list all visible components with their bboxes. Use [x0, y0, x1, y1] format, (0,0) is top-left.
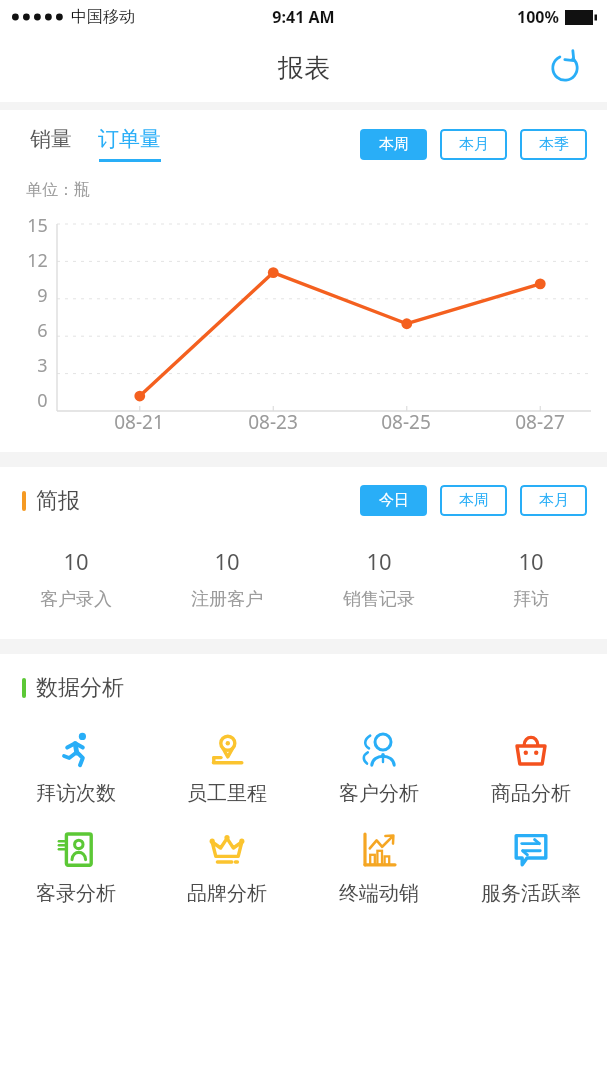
staticText: 08-23 — [248, 409, 298, 435]
staticText: 商品分析 — [491, 781, 571, 806]
button[interactable]: 本月 — [520, 485, 587, 516]
staticText: 品牌分析 — [187, 881, 267, 906]
staticText: 08-27 — [515, 409, 565, 435]
staticText: 本季 — [539, 135, 569, 154]
button[interactable]: 10 — [151, 546, 303, 611]
staticText: 注册客户 — [191, 588, 263, 611]
staticText: 本月 — [539, 491, 569, 510]
button[interactable]: 商品分析 — [455, 728, 607, 806]
staticText: 客户录入 — [40, 588, 112, 611]
button[interactable]: 终端动销 — [303, 828, 455, 906]
staticText: 拜访次数 — [36, 781, 116, 806]
staticText: 9:41 AM — [272, 6, 335, 28]
staticText: 终端动销 — [339, 881, 419, 906]
button[interactable]: 销量 — [26, 126, 76, 162]
staticText: 10 — [63, 546, 89, 576]
staticText: 9 — [37, 283, 48, 308]
staticText: 10 — [214, 546, 240, 576]
staticText: 销售记录 — [343, 588, 415, 611]
staticText: 服务活跃率 — [481, 881, 581, 906]
button[interactable]: 本季 — [520, 129, 587, 160]
staticText: 员工里程 — [187, 781, 267, 806]
button[interactable]: 订单量 — [98, 126, 161, 162]
button[interactable]: 10 — [0, 546, 151, 611]
staticText: 15 — [27, 213, 48, 238]
staticText: 数据分析 — [36, 674, 124, 702]
staticText: 销量 — [30, 126, 72, 152]
button[interactable]: 品牌分析 — [151, 828, 303, 906]
staticText: 拜访 — [513, 588, 549, 611]
staticText: 08-21 — [114, 409, 164, 435]
staticText: 10 — [366, 546, 392, 576]
staticText: 08-25 — [381, 409, 431, 435]
staticText: 本月 — [459, 135, 489, 154]
staticText: 报表 — [278, 52, 330, 85]
staticText: 0 — [37, 388, 48, 413]
button[interactable]: 客录分析 — [0, 828, 151, 906]
button[interactable]: Refresh — [541, 44, 589, 92]
staticText: 6 — [37, 318, 48, 343]
button[interactable]: 员工里程 — [151, 728, 303, 806]
staticText: 12 — [27, 248, 48, 273]
staticText: 客录分析 — [36, 881, 116, 906]
button[interactable]: 服务活跃率 — [455, 828, 607, 906]
staticText: 100% — [517, 6, 559, 28]
button[interactable]: 本周 — [440, 485, 507, 516]
button[interactable]: 10 — [455, 546, 607, 611]
staticText: 本周 — [379, 135, 409, 154]
staticText: 今日 — [379, 491, 409, 510]
staticText: 单位：瓶 — [26, 180, 90, 200]
staticText: 订单量 — [98, 126, 161, 152]
staticText: 3 — [37, 353, 48, 378]
button[interactable]: 本周 — [360, 129, 427, 160]
button[interactable]: 本月 — [440, 129, 507, 160]
button[interactable]: 10 — [303, 546, 455, 611]
button[interactable]: 客户分析 — [303, 728, 455, 806]
staticText: 简报 — [36, 487, 80, 515]
button[interactable]: 今日 — [360, 485, 427, 516]
staticText: 中国移动 — [71, 7, 135, 27]
button[interactable]: 拜访次数 — [0, 728, 151, 806]
staticText: 本周 — [459, 491, 489, 510]
staticText: 客户分析 — [339, 781, 419, 806]
staticText: 10 — [518, 546, 544, 576]
